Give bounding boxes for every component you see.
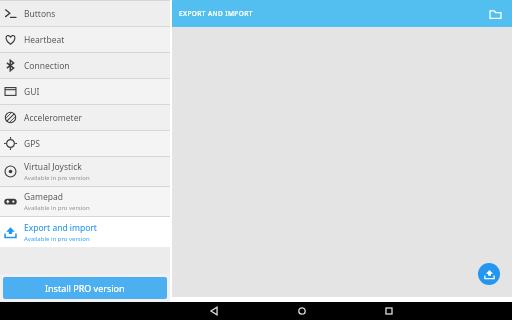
staticText: Buttons: [24, 8, 56, 20]
button[interactable]: Back: [170, 302, 258, 320]
staticText: Accelerometer: [24, 112, 82, 124]
button[interactable]: Export and import: [0, 217, 170, 247]
button[interactable]: Connection: [0, 53, 170, 78]
button[interactable]: Home: [258, 302, 345, 320]
button[interactable]: Install PRO version: [3, 277, 167, 299]
button[interactable]: Export: [478, 263, 500, 285]
staticText: Available in pro version: [24, 174, 90, 182]
staticText: EXPORT AND IMPORT: [179, 9, 253, 18]
button[interactable]: Buttons: [0, 1, 170, 26]
staticText: Heartbeat: [24, 34, 65, 46]
staticText: Virtual Joystick: [24, 161, 82, 173]
staticText: Available in pro version: [24, 235, 90, 243]
button[interactable]: Gamepad: [0, 187, 170, 216]
button[interactable]: Heartbeat: [0, 27, 170, 52]
button[interactable]: EXPORT AND IMPORT: [172, 0, 512, 27]
staticText: Available in pro version: [24, 204, 90, 212]
staticText: GPS: [24, 138, 40, 150]
button[interactable]: Open folder: [485, 4, 505, 24]
button[interactable]: GPS: [0, 131, 170, 156]
staticText: Connection: [24, 60, 70, 72]
staticText: Gamepad: [24, 191, 63, 203]
button[interactable]: Accelerometer: [0, 105, 170, 130]
staticText: Export and import: [24, 222, 97, 234]
button[interactable]: Recent apps: [345, 302, 432, 320]
button[interactable]: Virtual Joystick: [0, 157, 170, 186]
button[interactable]: GUI: [0, 79, 170, 104]
staticText: Install PRO version: [45, 282, 125, 294]
staticText: GUI: [24, 86, 40, 98]
